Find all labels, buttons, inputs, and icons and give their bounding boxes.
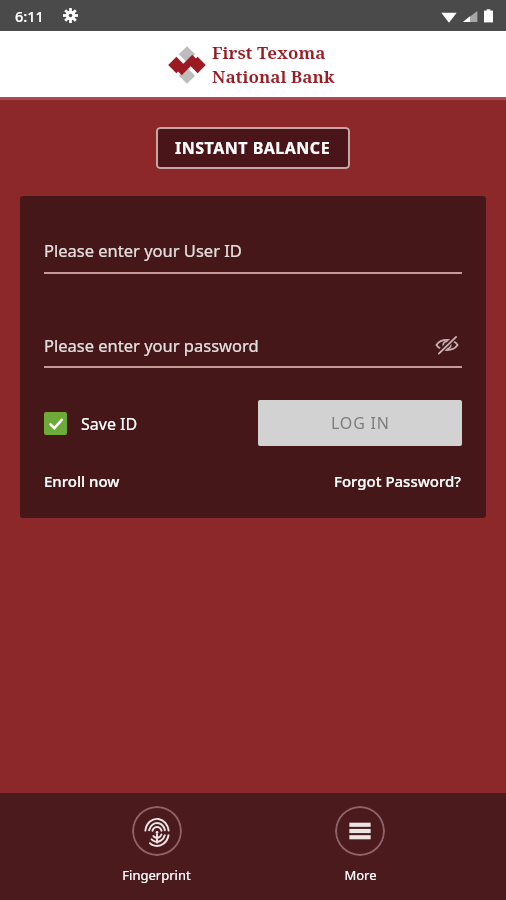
staticText: LOG IN (331, 412, 390, 434)
button[interactable]: Enroll now (44, 471, 120, 491)
button[interactable]: LOG IN (258, 400, 462, 446)
staticText: Forgot Password? (334, 471, 462, 491)
staticText: Fingerprint (122, 866, 191, 884)
button[interactable]: Please enter your User ID (44, 239, 462, 274)
button[interactable]: Save ID (44, 412, 138, 435)
button[interactable]: More (335, 793, 385, 884)
staticText: National Bank (212, 65, 335, 88)
other: More (347, 818, 373, 844)
button[interactable]: Fingerprint (122, 793, 191, 884)
staticText: Please enter your password (44, 334, 432, 356)
staticText: INSTANT BALANCE (175, 137, 331, 159)
staticText: Please enter your User ID (44, 239, 242, 261)
button[interactable]: Forgot Password? (334, 471, 462, 491)
staticText: Save ID (81, 413, 138, 435)
staticText: First Texoma (212, 41, 326, 64)
button[interactable]: Please enter your password (44, 330, 462, 368)
staticText: 6:11 (15, 6, 44, 26)
staticText: More (344, 866, 377, 884)
other: Fingerprint (143, 817, 171, 845)
button[interactable]: Show password (432, 330, 462, 360)
staticText: Enroll now (44, 471, 120, 491)
button[interactable]: INSTANT BALANCE (156, 127, 350, 169)
